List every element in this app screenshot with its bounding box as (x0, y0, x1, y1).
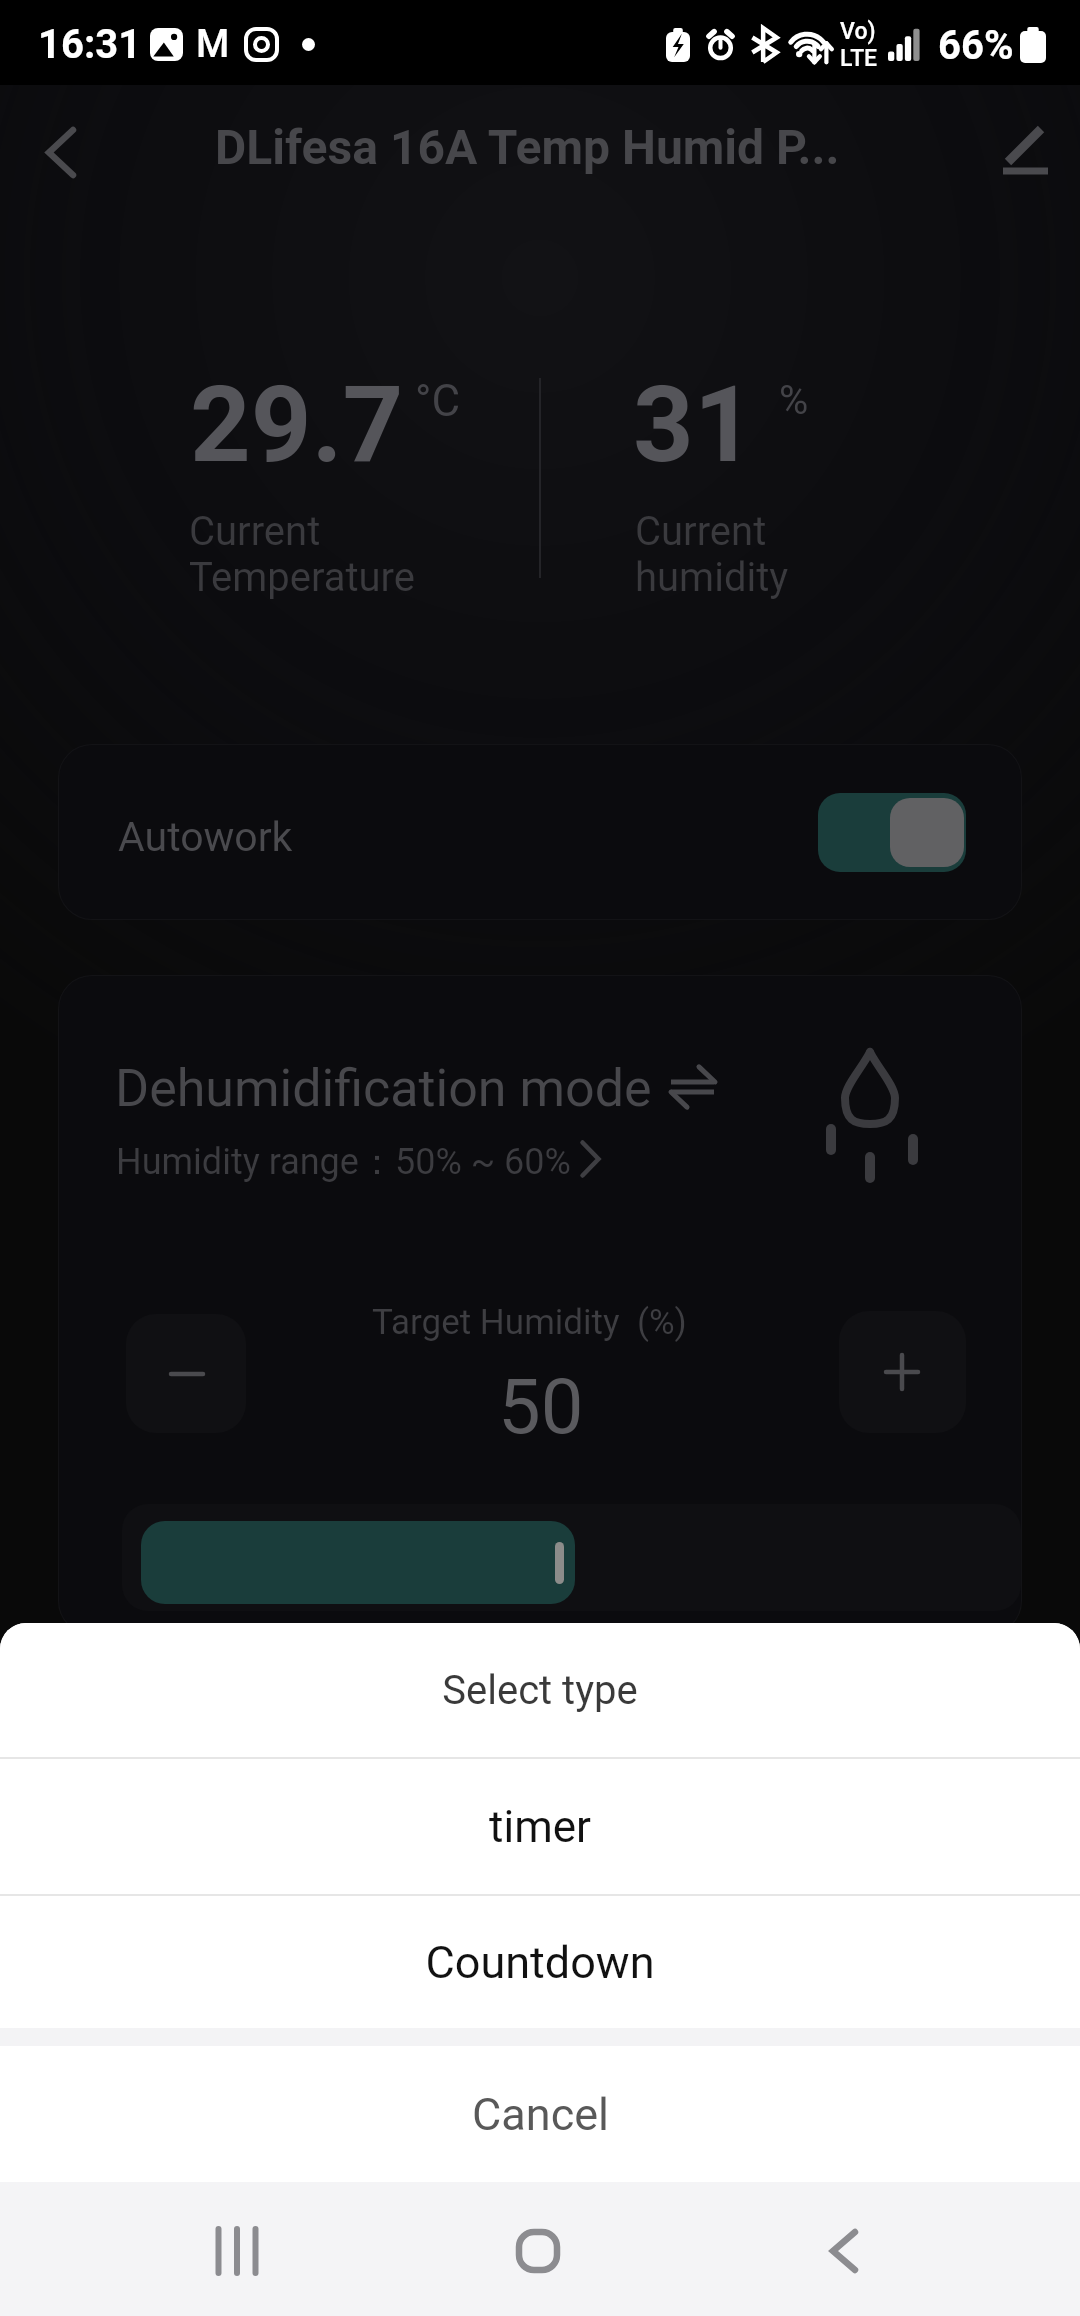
staticText: Vo) (840, 18, 876, 45)
staticText: DLifesa 16A Temp Humid P... (215, 119, 840, 175)
staticText: Target Humidity (%) (372, 1302, 687, 1343)
button[interactable]: Increase (839, 1311, 966, 1433)
staticText: Current humidity (635, 508, 789, 601)
staticText: Select type (442, 1667, 638, 1714)
staticText: timer (489, 1801, 591, 1853)
button[interactable]: Back (781, 2190, 901, 2310)
staticText: LTE (840, 45, 878, 72)
staticText: Humidity range：50% ~ 60% (116, 1139, 571, 1184)
button[interactable]: Recent apps (176, 2190, 296, 2310)
button[interactable]: Edit (978, 111, 1058, 191)
staticText: Countdown (425, 1936, 655, 1989)
staticText: 31 (633, 363, 755, 487)
button[interactable]: timer (0, 1759, 1080, 1894)
button[interactable]: Humidity slider (122, 1504, 1021, 1611)
staticText: 50 (498, 1362, 584, 1451)
staticText: Cancel (472, 2088, 609, 2141)
button[interactable]: Decrease (126, 1314, 246, 1433)
staticText: Dehumidification mode (115, 1058, 652, 1119)
button[interactable]: Autowork toggle (818, 793, 966, 872)
staticText: 16:31 (38, 21, 142, 68)
button[interactable]: Countdown (0, 1896, 1080, 2028)
staticText: °C (415, 375, 461, 427)
staticText: M (196, 22, 230, 67)
staticText: Autowork (118, 813, 293, 861)
staticText: Current Temperature (189, 508, 415, 601)
button[interactable]: Autowork (59, 745, 1021, 919)
staticText: % (779, 377, 809, 424)
staticText: 66% (938, 22, 1014, 69)
button[interactable]: Home (478, 2190, 598, 2310)
staticText: 29.7 (190, 363, 404, 487)
button[interactable]: Select type (0, 1623, 1080, 1757)
button[interactable]: Cancel (0, 2046, 1080, 2182)
button[interactable]: Back (22, 111, 102, 191)
